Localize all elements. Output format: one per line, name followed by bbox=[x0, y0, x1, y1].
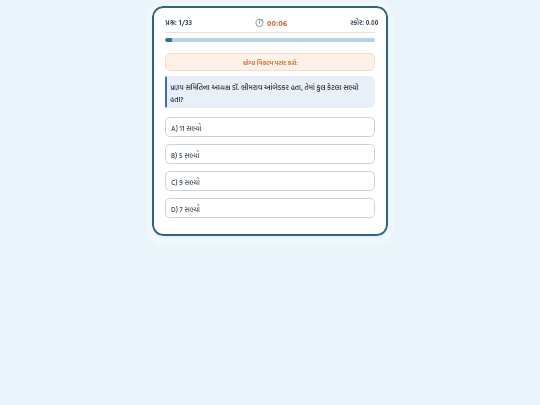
staticText: B) 5 સભ્યો bbox=[171, 150, 200, 160]
staticText: સ્કોર: 0.00 bbox=[350, 18, 379, 28]
staticText: D) 7 સભ્યો bbox=[171, 204, 200, 214]
staticText: C) 9 સભ્યો bbox=[171, 177, 200, 187]
staticText: 00:06 bbox=[267, 17, 288, 29]
staticText: યોગ્ય વિકલ્પ પસંદ કરો: bbox=[243, 58, 298, 67]
button[interactable]: C) 9 સભ્યો bbox=[165, 171, 375, 191]
staticText: પ્રશ્ન: 1/33 bbox=[165, 17, 192, 28]
button[interactable]: A) 11 સભ્યો bbox=[165, 117, 375, 137]
other: Timer bbox=[255, 18, 264, 27]
button[interactable]: D) 7 સભ્યો bbox=[165, 198, 375, 218]
staticText: પ્રારૂપ સમિતિના અધ્યક્ષ ડૉ. ભીમરાવ આંબેડ… bbox=[170, 82, 369, 104]
staticText: A) 11 સભ્યો bbox=[171, 123, 202, 133]
button[interactable]: B) 5 સભ્યો bbox=[165, 144, 375, 164]
